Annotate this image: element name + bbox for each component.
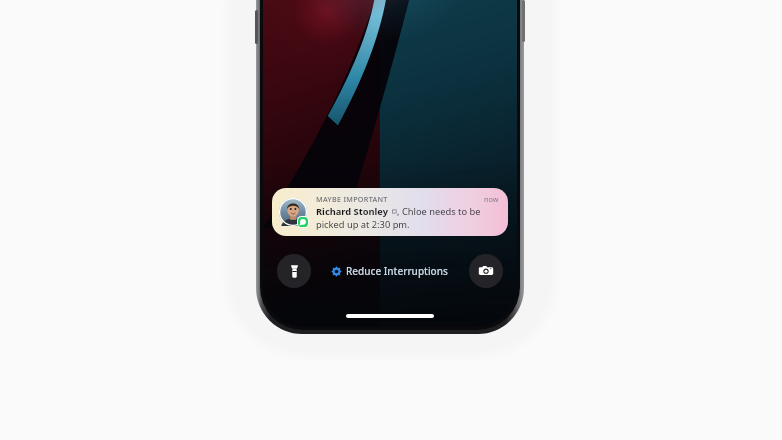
button[interactable]: Camera xyxy=(469,254,503,288)
staticText: picked up at 2:30 pm. xyxy=(316,218,410,231)
button[interactable]: Flashlight xyxy=(277,254,311,288)
button[interactable]: Reduce Interruptions xyxy=(326,260,453,282)
staticText: Reduce Interruptions xyxy=(346,264,448,278)
staticText: now xyxy=(484,194,499,204)
staticText: , Chloe needs to be xyxy=(397,205,481,218)
button[interactable]: MAYBE IMPORTANT xyxy=(272,188,508,236)
staticText: Richard Stonley xyxy=(316,205,389,218)
staticText: MAYBE IMPORTANT xyxy=(316,194,388,204)
